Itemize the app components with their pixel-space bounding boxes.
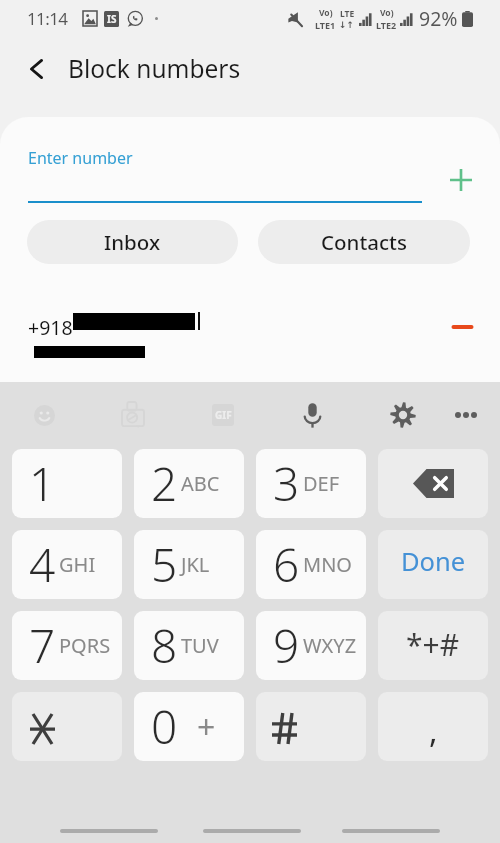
staticText: LTE2 [376, 19, 397, 31]
button[interactable]: Contacts [258, 220, 470, 264]
button[interactable] [256, 692, 366, 761]
button[interactable]: 8 [134, 611, 244, 680]
other: Backspace [413, 469, 454, 498]
button[interactable]: , [378, 692, 488, 761]
button[interactable]: 5 [134, 530, 244, 599]
staticText: GHI [59, 551, 96, 578]
button[interactable]: +918 [0, 290, 500, 364]
staticText: + [197, 705, 216, 749]
staticText: Inbox [104, 228, 161, 256]
staticText: DEF [303, 470, 340, 497]
staticText: Contacts [321, 228, 407, 256]
staticText: JKL [181, 551, 210, 578]
staticText: Block numbers [68, 52, 241, 85]
staticText: Vo) [319, 7, 333, 19]
staticText: 7 [29, 614, 56, 677]
button[interactable]: Back [14, 47, 58, 91]
staticText: ↓↑ [339, 20, 355, 30]
staticText: 5 [151, 533, 178, 596]
staticText: Done [401, 544, 466, 579]
staticText: +918 [28, 314, 73, 341]
staticText: TUV [181, 632, 219, 659]
staticText: LTE [340, 8, 355, 20]
button[interactable]: Unblock [442, 307, 482, 347]
button[interactable]: 9 [256, 611, 366, 680]
button[interactable]: 2 [134, 449, 244, 518]
staticText: 3 [273, 452, 300, 515]
staticText: 2 [151, 452, 178, 515]
button[interactable]: 6 [256, 530, 366, 599]
button[interactable]: GIF [197, 382, 249, 448]
button[interactable]: Done [378, 530, 488, 599]
staticText: ABC [181, 470, 220, 497]
staticText: *+# [406, 624, 460, 665]
button[interactable]: Inbox [27, 220, 238, 264]
button[interactable]: 0 [134, 692, 244, 761]
staticText: 92% [419, 5, 458, 32]
staticText: 4 [29, 533, 56, 596]
staticText: LTE1 [315, 19, 336, 31]
button[interactable]: 7 [12, 611, 122, 680]
staticText: GIF [215, 408, 232, 422]
staticText: 11:14 [27, 7, 68, 30]
button[interactable]: Backspace [378, 449, 488, 518]
staticText: 1 [29, 452, 56, 515]
button[interactable]: System navigation [60, 820, 158, 842]
staticText: IS [107, 12, 117, 26]
button[interactable]: System navigation [203, 820, 301, 842]
staticText: Vo) [380, 7, 394, 19]
button[interactable]: 3 [256, 449, 366, 518]
button[interactable]: 4 [12, 530, 122, 599]
button[interactable]: *+# [378, 611, 488, 680]
staticText: WXYZ [303, 632, 357, 659]
staticText: , [429, 709, 438, 753]
staticText: PQRS [59, 632, 111, 659]
staticText: 8 [151, 614, 178, 677]
staticText: 9 [273, 614, 300, 677]
staticText: MNO [303, 551, 352, 578]
staticText: Enter number [28, 147, 133, 169]
button[interactable]: Settings [377, 382, 429, 448]
button[interactable] [12, 692, 122, 761]
staticText: 0 [151, 695, 178, 758]
button[interactable]: 1 [12, 449, 122, 518]
button[interactable]: More options [440, 382, 492, 448]
staticText: 6 [273, 533, 300, 596]
button[interactable]: System navigation [342, 820, 440, 842]
button[interactable]: Add [441, 160, 481, 200]
button[interactable]: Voice input [286, 382, 338, 448]
